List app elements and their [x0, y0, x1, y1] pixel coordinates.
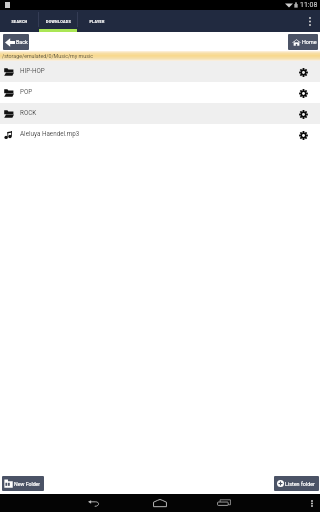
button[interactable]: HIP-HOP — [0, 61, 320, 82]
button[interactable]: Item settings — [293, 62, 313, 82]
staticText: /storage/emulated/0/Music/my music — [2, 53, 93, 59]
staticText: Aleluya Haendel.mp3 — [20, 130, 80, 137]
staticText: ROCK — [20, 109, 37, 116]
button[interactable]: Home — [151, 494, 169, 512]
button[interactable]: Back — [3, 34, 29, 50]
staticText: 11:08 — [300, 1, 318, 9]
button[interactable]: Item settings — [293, 104, 313, 124]
button[interactable]: Item settings — [293, 83, 313, 103]
button[interactable]: Listen folder — [274, 476, 319, 491]
button[interactable]: Item settings — [293, 125, 313, 145]
button[interactable]: Aleluya Haendel.mp3 — [0, 124, 320, 145]
staticText: POP — [20, 88, 33, 95]
button[interactable]: POP — [0, 82, 320, 103]
staticText: PLAYER — [89, 20, 105, 24]
button[interactable]: Recent apps — [215, 494, 233, 512]
button[interactable]: SEARCH — [0, 10, 38, 32]
button[interactable]: DOWNLOADS — [39, 10, 77, 32]
staticText: New Folder — [14, 481, 41, 487]
staticText: HIP-HOP — [20, 67, 45, 74]
button[interactable]: Home — [288, 34, 318, 50]
staticText: DOWNLOADS — [46, 20, 71, 24]
staticText: Listen folder — [285, 481, 315, 487]
staticText: Home — [302, 39, 317, 45]
button[interactable]: More options — [300, 10, 320, 32]
staticText: Back — [16, 39, 28, 45]
staticText: SEARCH — [11, 20, 28, 24]
button[interactable]: PLAYER — [78, 10, 116, 32]
button[interactable]: Back — [85, 494, 103, 512]
button[interactable]: ROCK — [0, 103, 320, 124]
button[interactable]: Menu — [304, 494, 320, 512]
button[interactable]: New Folder — [2, 476, 44, 491]
